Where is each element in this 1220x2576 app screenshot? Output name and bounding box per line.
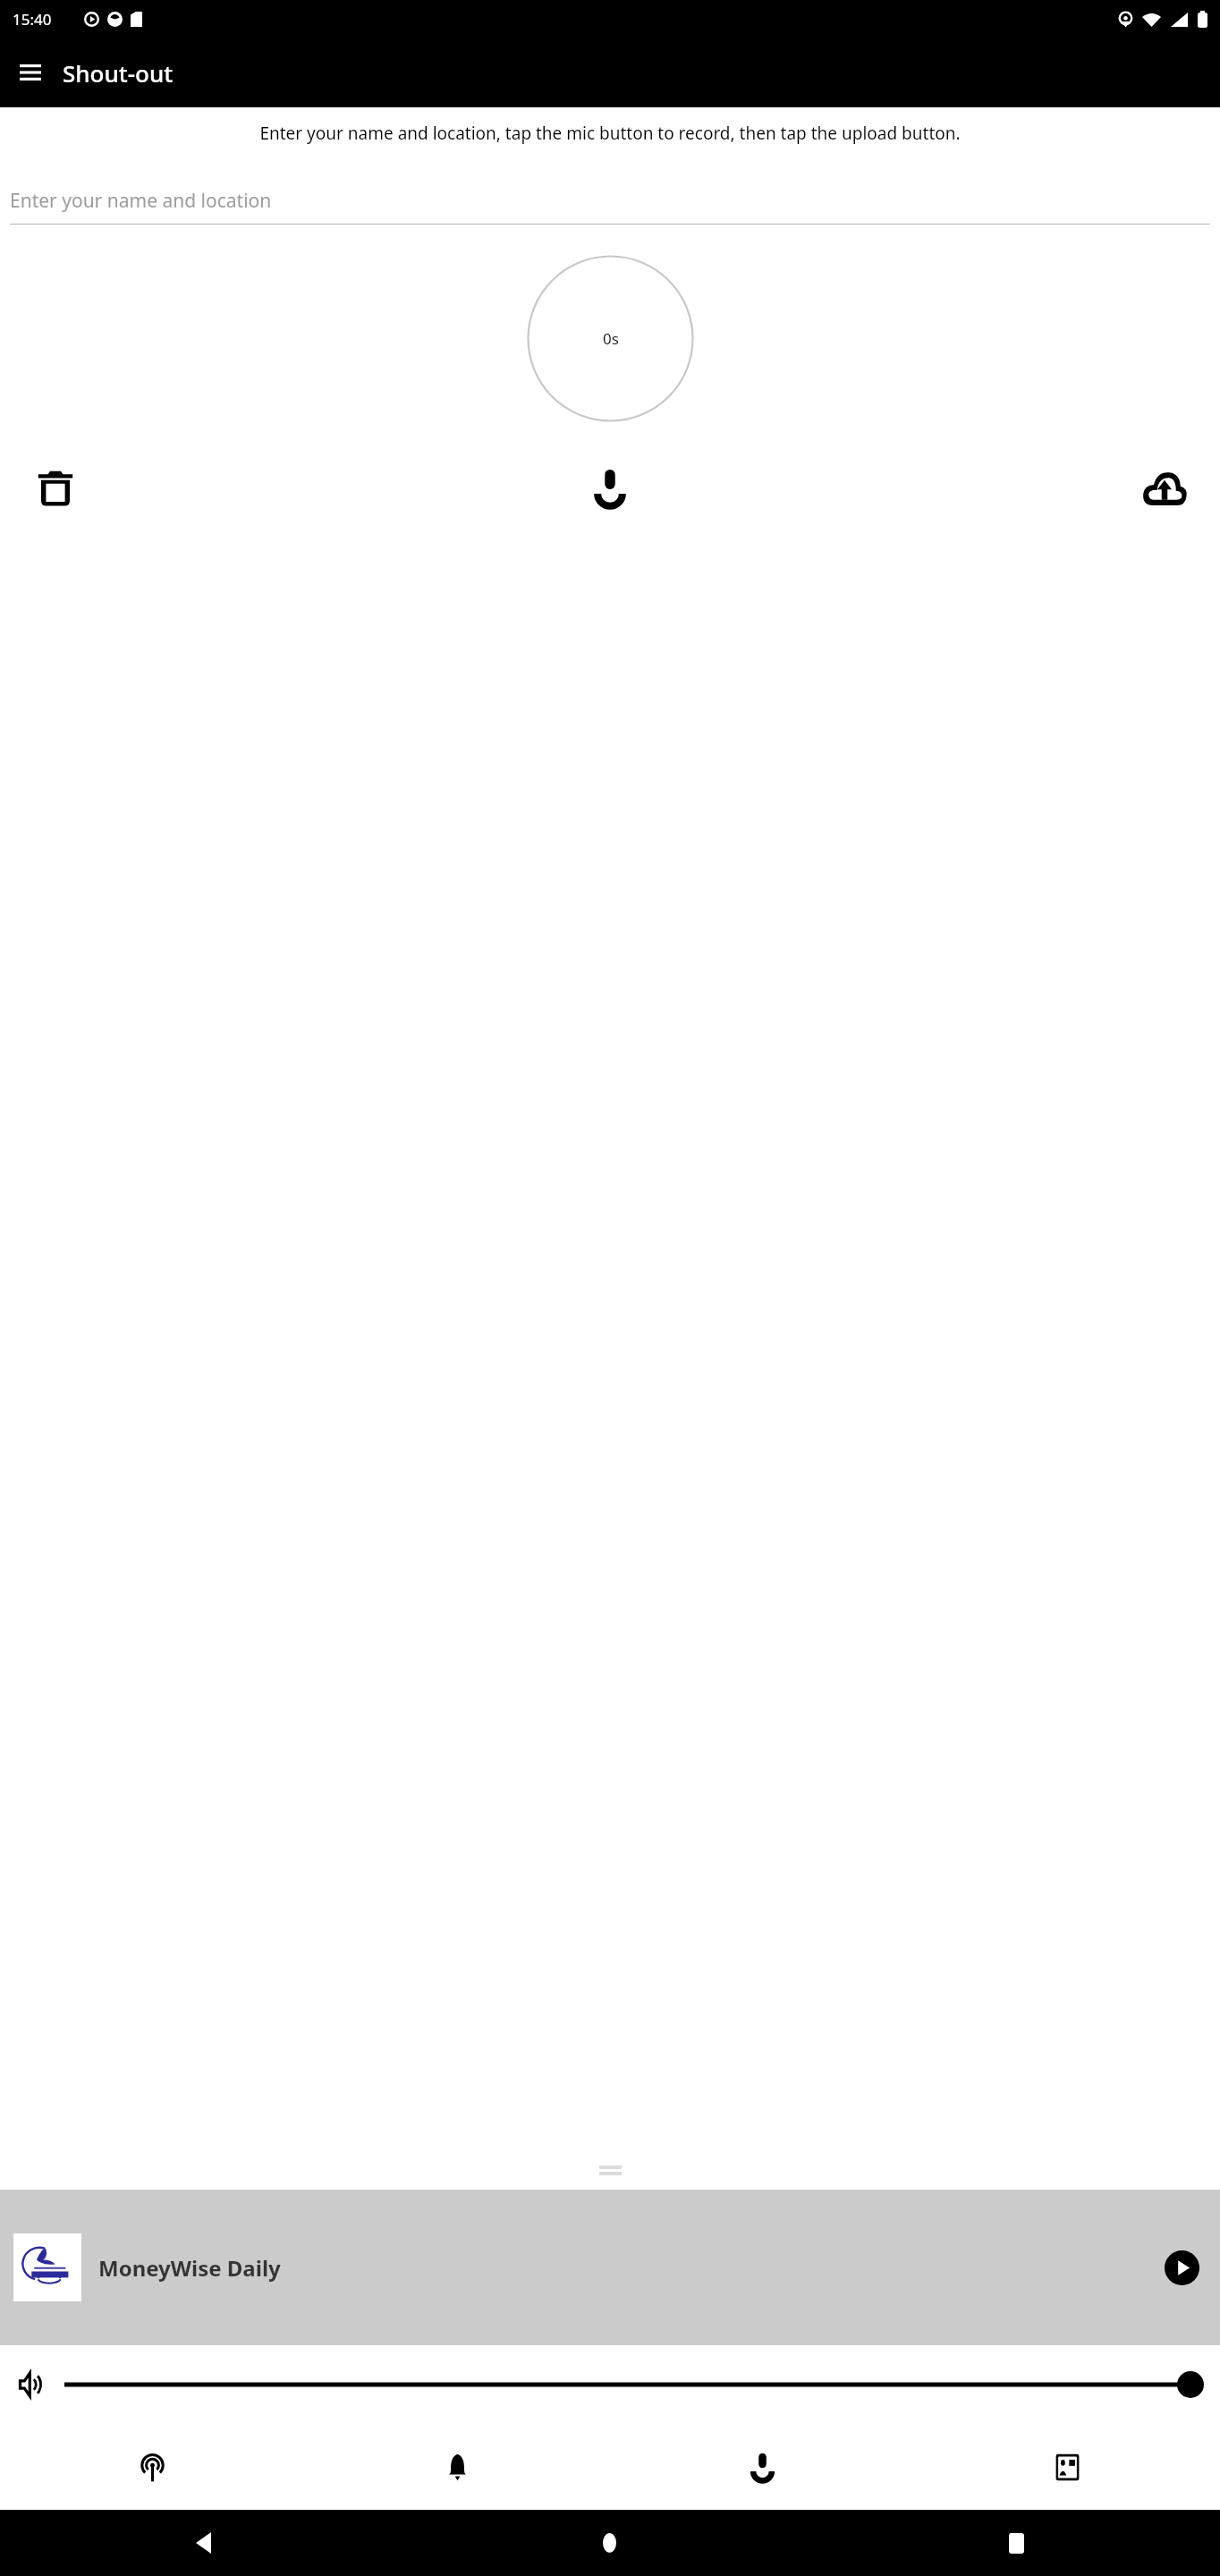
button[interactable]: Open navigation menu	[7, 49, 54, 96]
button[interactable]: Contact	[915, 2424, 1220, 2510]
staticText: MoneyWise Daily	[98, 2253, 1156, 2283]
staticText: 0s	[603, 328, 619, 349]
button[interactable]: Upload	[1132, 456, 1197, 521]
button[interactable]: Volume	[11, 2363, 54, 2406]
button[interactable]: Play	[1156, 2242, 1207, 2292]
staticText: 15:40	[13, 9, 52, 30]
staticText: Enter your name and location	[10, 188, 272, 214]
staticText: Shout-out	[63, 57, 174, 89]
button[interactable]: Alerts	[305, 2424, 610, 2510]
button[interactable]: Volume slider	[64, 2365, 1190, 2404]
button[interactable]: Recent apps	[813, 2510, 1220, 2576]
button[interactable]: Shout-out	[610, 2424, 915, 2510]
button[interactable]: MoneyWise Daily	[0, 2190, 1220, 2345]
button[interactable]: Back	[0, 2510, 406, 2576]
button[interactable]: Live radio	[0, 2424, 305, 2510]
button[interactable]: Record	[578, 456, 642, 521]
button[interactable]: Home	[406, 2510, 813, 2576]
staticText: Enter your name and location, tap the mi…	[15, 122, 1205, 145]
button[interactable]: Delete recording	[23, 456, 88, 521]
button[interactable]: Enter your name and location	[10, 188, 1210, 225]
